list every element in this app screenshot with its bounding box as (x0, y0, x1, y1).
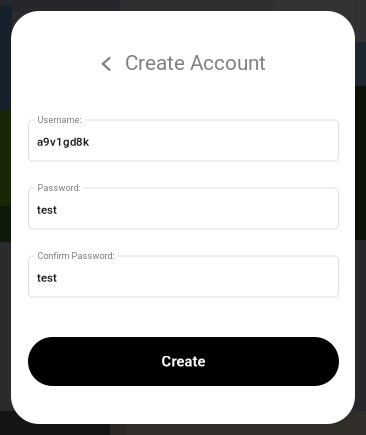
staticText: Password: (37, 182, 80, 193)
button[interactable]: a9v1gd8k (28, 113, 338, 161)
staticText: a9v1gd8k (37, 135, 89, 148)
staticText: Create (161, 353, 205, 370)
staticText: Confirm Password: (37, 250, 114, 261)
button[interactable]: Create (28, 337, 339, 386)
button[interactable]: test (28, 181, 338, 229)
staticText: Username: (37, 114, 81, 125)
button[interactable]: test (28, 249, 338, 297)
button[interactable]: Back (94, 52, 118, 76)
staticText: test (37, 203, 57, 216)
staticText: test (37, 271, 57, 284)
staticText: Create Account (125, 51, 266, 75)
